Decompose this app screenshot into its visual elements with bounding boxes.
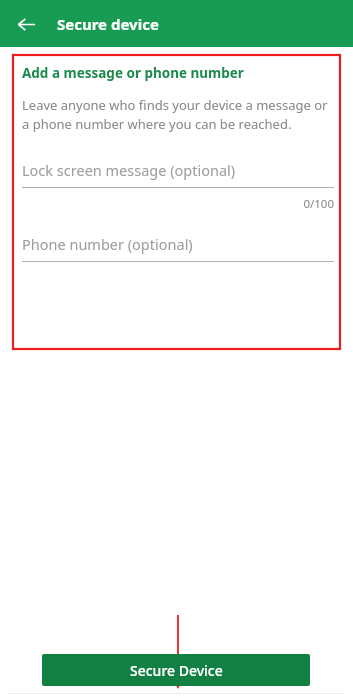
staticText: Lock screen message (optional) bbox=[22, 160, 236, 180]
button[interactable]: Back bbox=[9, 7, 43, 41]
staticText: Phone number (optional) bbox=[22, 234, 193, 254]
staticText: Add a message or phone number bbox=[22, 64, 244, 82]
staticText: Leave anyone who finds your device a mes… bbox=[22, 96, 334, 133]
staticText: Secure device bbox=[57, 14, 159, 34]
button[interactable]: Secure Device bbox=[42, 654, 310, 686]
staticText: Secure Device bbox=[130, 661, 223, 680]
staticText: 0/100 bbox=[22, 196, 334, 212]
